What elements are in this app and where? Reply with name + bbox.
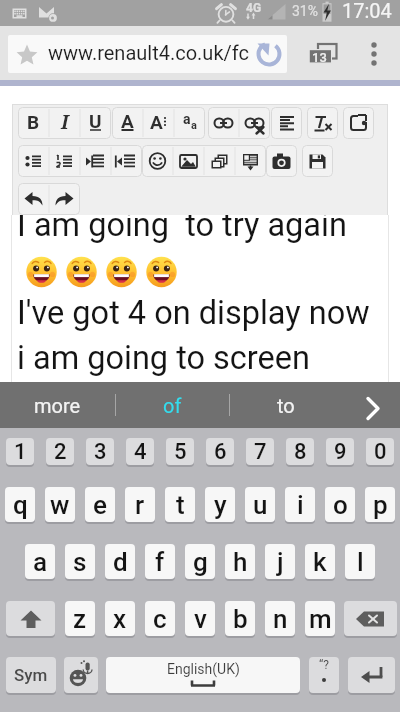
staticText: f (155, 547, 165, 577)
button[interactable]: 3 (86, 438, 114, 465)
staticText: g (193, 547, 208, 577)
staticText: Sym (14, 665, 48, 685)
staticText: x (113, 604, 127, 634)
button[interactable]: y (205, 487, 235, 522)
button[interactable]: of (115, 382, 229, 428)
staticText: of (163, 394, 182, 417)
button[interactable]: 8 (286, 438, 314, 465)
button[interactable]: a (25, 544, 55, 579)
staticText: I (61, 109, 69, 135)
staticText: w (50, 490, 70, 520)
button[interactable]: x (105, 601, 135, 636)
button[interactable]: Redo (49, 183, 80, 215)
staticText: 9 (334, 439, 347, 465)
button[interactable]: r (125, 487, 155, 522)
staticText: 1 (14, 439, 27, 465)
button[interactable]: Punctuation (309, 657, 339, 693)
button[interactable]: 9 (326, 438, 354, 465)
staticText: 7 (254, 439, 267, 465)
button[interactable]: d (105, 544, 135, 579)
staticText: i am going to screen (17, 339, 310, 377)
button[interactable]: 1 (6, 438, 34, 465)
button[interactable]: Text colour (112, 107, 143, 139)
button[interactable]: q (5, 487, 35, 522)
button[interactable]: 0 (366, 438, 394, 465)
staticText: 5 (174, 439, 187, 465)
button[interactable]: e (85, 487, 115, 522)
staticText: more (34, 394, 81, 417)
button[interactable]: n (265, 601, 295, 636)
button[interactable]: Insert link (208, 107, 239, 139)
button[interactable]: j (265, 544, 295, 579)
button[interactable]: to (229, 382, 343, 428)
button[interactable]: l (345, 544, 375, 579)
button[interactable]: b (225, 601, 255, 636)
button[interactable]: www.renault4.co.uk/fc (8, 35, 287, 73)
button[interactable]: Camera (266, 145, 297, 177)
button[interactable]: h (225, 544, 255, 579)
button[interactable]: More options (352, 33, 396, 75)
button[interactable]: 4 (126, 438, 154, 465)
button[interactable]: u (245, 487, 275, 522)
button[interactable]: k (305, 544, 335, 579)
button[interactable]: Voice and emoji (64, 657, 98, 693)
button[interactable]: 5 (166, 438, 194, 465)
button[interactable]: m (305, 601, 335, 636)
button[interactable]: More suggestions (343, 382, 400, 428)
staticText: a (183, 111, 191, 127)
staticText: 6 (214, 439, 227, 465)
other: Reload (255, 40, 283, 68)
staticText: t (176, 490, 185, 520)
button[interactable]: Backspace (344, 601, 397, 636)
button[interactable]: Tabs (300, 35, 344, 73)
button[interactable]: c (145, 601, 175, 636)
button[interactable]: 2 (46, 438, 74, 465)
button[interactable]: i (285, 487, 315, 522)
button[interactable]: more (0, 382, 115, 428)
button[interactable]: w (45, 487, 75, 522)
button[interactable]: t (165, 487, 195, 522)
button[interactable]: Indent (80, 145, 111, 177)
button[interactable]: Bulleted list (18, 145, 49, 177)
button[interactable]: Paste (235, 145, 266, 177)
button[interactable]: Enter (348, 657, 395, 693)
button[interactable]: Space (106, 657, 300, 693)
button[interactable]: Numbered list (49, 145, 80, 177)
button[interactable]: 6 (206, 438, 234, 465)
button[interactable]: g (185, 544, 215, 579)
button[interactable]: Image (173, 145, 204, 177)
button[interactable]: Italic (49, 107, 80, 139)
button[interactable]: Bold (18, 107, 49, 139)
button[interactable]: Font (174, 107, 205, 139)
button[interactable]: f (145, 544, 175, 579)
staticText: 2 (54, 439, 67, 465)
staticText: c (153, 604, 167, 634)
button[interactable]: Underline (80, 107, 111, 139)
button[interactable]: Undo (18, 183, 49, 215)
button[interactable]: v (185, 601, 215, 636)
button[interactable]: Save (302, 145, 333, 177)
button[interactable]: 7 (246, 438, 274, 465)
button[interactable]: Sym (6, 657, 56, 693)
staticText: d (113, 547, 128, 577)
button[interactable]: Emoji (142, 145, 173, 177)
staticText: “? (319, 658, 329, 672)
button[interactable]: Clear formatting (307, 107, 338, 139)
staticText: B (27, 111, 40, 133)
button[interactable]: o (325, 487, 355, 522)
button[interactable]: z (65, 601, 95, 636)
staticText: h (233, 547, 248, 577)
button[interactable]: p (365, 487, 395, 522)
button[interactable]: s (65, 544, 95, 579)
button[interactable]: Font size (143, 107, 174, 139)
staticText: m (309, 604, 332, 634)
button[interactable]: Outdent (111, 145, 142, 177)
button[interactable]: Align (271, 107, 302, 139)
staticText: 0 (374, 439, 387, 465)
button[interactable]: Shift (6, 601, 55, 636)
button[interactable]: Copy (204, 145, 235, 177)
button[interactable]: Source (343, 107, 374, 139)
button[interactable]: Remove link (239, 107, 270, 139)
staticText: s (73, 547, 87, 577)
staticText: a (191, 119, 197, 132)
